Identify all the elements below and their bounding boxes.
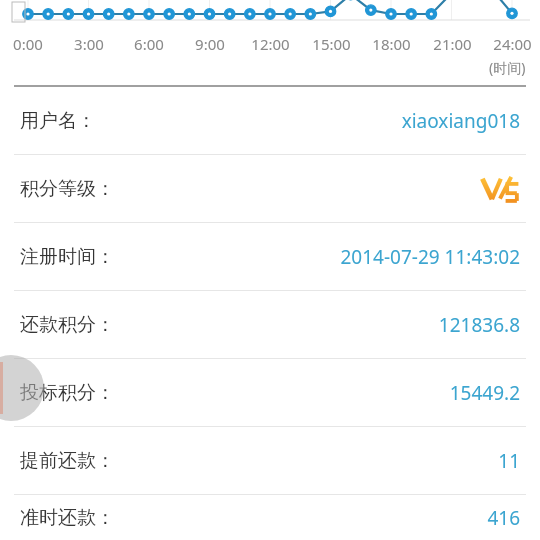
button[interactable]: Floating assistant [0,355,44,421]
button[interactable]: 提前还款： [0,427,540,494]
staticText: 18:00 [372,34,411,54]
button[interactable]: 准时还款： [0,495,540,540]
button[interactable]: 用户名： [0,87,540,154]
staticText: 11 [498,448,520,474]
staticText: xiaoxiang018 [401,108,520,134]
staticText: 投标积分： [20,381,115,405]
staticText: 416 [487,505,520,531]
staticText: 3:00 [74,34,104,54]
staticText: 9:00 [195,34,225,54]
staticText: 注册时间： [20,245,115,269]
staticText: 24:00 [493,34,532,54]
staticText: 15:00 [312,34,351,54]
button[interactable]: 注册时间： [0,223,540,290]
staticText: 121836.8 [438,312,520,338]
button[interactable]: 积分等级： [0,155,540,222]
staticText: 6:00 [134,34,164,54]
staticText: 2014-07-29 11:43:02 [340,244,520,270]
staticText: 15449.2 [449,380,520,406]
other: Level V5 [480,173,520,205]
staticText: 还款积分： [20,313,115,337]
staticText: 积分等级： [20,177,115,201]
button[interactable]: 投标积分： [0,359,540,426]
staticText: (时间) [489,58,526,77]
staticText: 21:00 [433,34,472,54]
staticText: 准时还款： [20,506,115,530]
staticText: 用户名： [20,109,96,133]
staticText: 提前还款： [20,449,115,473]
button[interactable]: 还款积分： [0,291,540,358]
staticText: 0:00 [13,34,43,54]
staticText: 12:00 [251,34,290,54]
